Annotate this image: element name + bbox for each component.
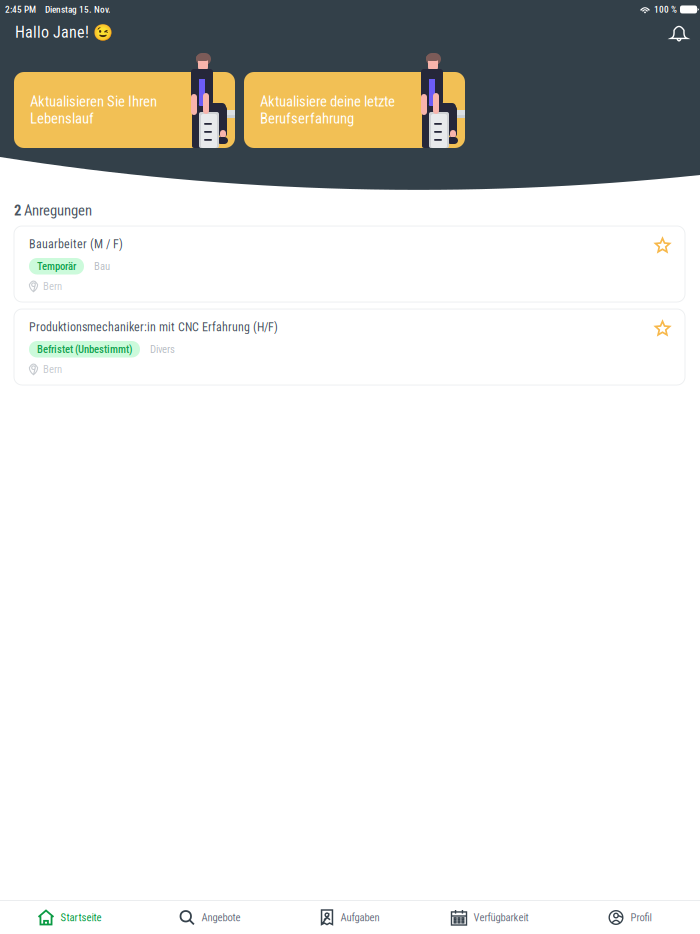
staticText: Produktionsmechaniker:in mit CNC Erfahru…: [29, 320, 278, 334]
staticText: Dienstag 15. Nov.: [45, 4, 111, 15]
staticText: Befristet (Unbestimmt): [37, 343, 132, 355]
staticText: Divers: [150, 343, 175, 355]
button[interactable]: Verfügbarkeit: [420, 901, 560, 934]
staticText: Bern: [43, 363, 62, 375]
button[interactable]: Aufgaben: [280, 901, 420, 934]
staticText: Angebote: [201, 911, 240, 924]
button[interactable]: Bauarbeiter (M / F): [0, 226, 685, 302]
staticText: 100 %: [654, 4, 677, 15]
staticText: Temporär: [37, 260, 76, 272]
staticText: Bauarbeiter (M / F): [29, 237, 123, 251]
staticText: Anregungen: [21, 202, 92, 219]
button[interactable]: Aktualisiere deine letzte Berufserfahrun…: [244, 72, 465, 148]
staticText: Bern: [43, 280, 62, 292]
staticText: Aktualisieren Sie Ihren Lebenslauf: [30, 93, 157, 127]
staticText: 2: [14, 202, 21, 219]
button[interactable]: Startseite: [0, 901, 140, 934]
staticText: Startseite: [60, 911, 101, 924]
staticText: Verfügbarkeit: [473, 911, 528, 924]
staticText: 2:45 PM: [5, 4, 36, 15]
staticText: Aktualisiere deine letzte Berufserfahrun…: [260, 93, 395, 127]
staticText: Aufgaben: [340, 911, 379, 924]
button[interactable]: Angebote: [140, 901, 280, 934]
button[interactable]: Profil: [560, 901, 700, 934]
button[interactable]: Benachrichtigungen: [665, 19, 693, 47]
staticText: Hallo Jane! 😉: [15, 23, 113, 42]
button[interactable]: Produktionsmechaniker:in mit CNC Erfahru…: [0, 309, 685, 385]
button[interactable]: Aktualisieren Sie Ihren Lebenslauf: [14, 72, 235, 148]
staticText: Bau: [94, 260, 110, 272]
staticText: Profil: [630, 911, 651, 924]
